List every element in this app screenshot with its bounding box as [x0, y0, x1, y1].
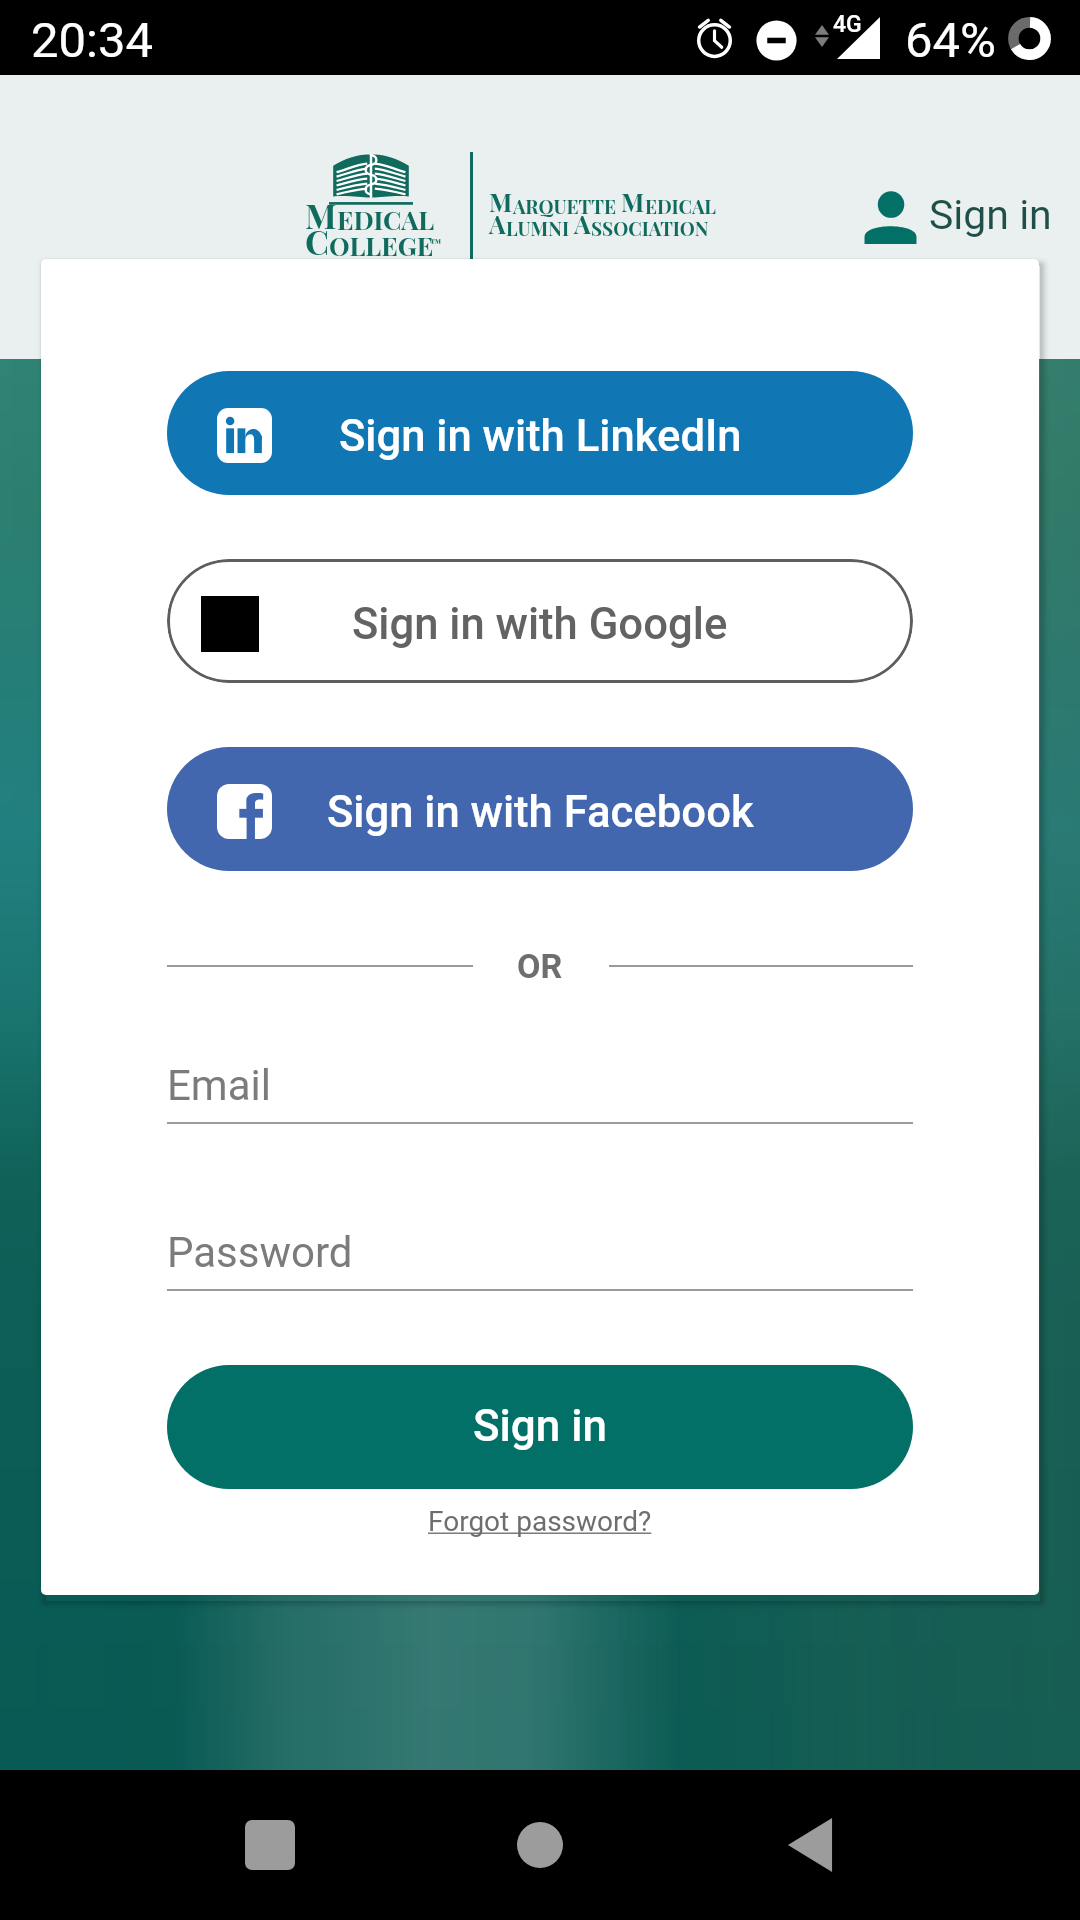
- staticText: 64%: [905, 12, 996, 69]
- button[interactable]: Sign in: [167, 1365, 913, 1489]
- staticText: A: [489, 207, 506, 240]
- staticText: Email: [167, 1061, 271, 1110]
- staticText: Sign in with Google: [352, 599, 728, 650]
- staticText: Sign in with Facebook: [327, 787, 754, 838]
- button[interactable]: Home: [496, 1801, 584, 1889]
- staticText: Sign in: [929, 191, 1052, 239]
- staticText: Password: [167, 1228, 353, 1277]
- staticText: SSOCIATION: [591, 215, 709, 240]
- staticText: M: [305, 192, 337, 237]
- staticText: EDICAL: [337, 202, 435, 237]
- staticText: C: [305, 218, 329, 263]
- button[interactable]: Sign in with LinkedIn: [167, 371, 913, 495]
- staticText: A: [574, 207, 591, 240]
- staticText: LUMNI: [506, 215, 574, 240]
- staticText: Sign in: [473, 1400, 607, 1452]
- staticText: ™: [430, 235, 442, 250]
- staticText: EDICAL: [645, 193, 716, 218]
- staticText: OLLEGE: [329, 228, 434, 263]
- staticText: M: [489, 185, 513, 218]
- button[interactable]: Sign in with Facebook: [167, 747, 913, 871]
- button[interactable]: Back: [766, 1801, 854, 1889]
- staticText: ARQUETTE: [513, 193, 621, 218]
- button[interactable]: Forgot password?: [418, 1499, 662, 1544]
- staticText: 4G: [833, 11, 862, 38]
- staticText: M: [621, 185, 645, 218]
- staticText: OR: [517, 946, 563, 986]
- button[interactable]: Sign in: [864, 191, 1052, 244]
- button[interactable]: Recent apps: [226, 1801, 314, 1889]
- staticText: 20:34: [31, 12, 154, 69]
- button[interactable]: Sign in with Google: [167, 559, 913, 683]
- staticText: Sign in with LinkedIn: [339, 411, 742, 462]
